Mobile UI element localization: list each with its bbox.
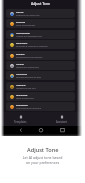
staticText: Tactful and polite tone bbox=[16, 97, 34, 99]
button[interactable]: Authoritative bbox=[6, 30, 75, 39]
staticText: Authoritative bbox=[16, 32, 30, 35]
staticText: Informal bbox=[16, 21, 26, 24]
button[interactable]: Diplomatic bbox=[6, 92, 75, 101]
staticText: Diplomatic bbox=[16, 94, 28, 97]
staticText: Assertive and commanding tone bbox=[16, 35, 42, 37]
button[interactable]: Assistant bbox=[41, 112, 82, 124]
button[interactable]: Emotive bbox=[6, 51, 75, 60]
staticText: Professional and serious tone bbox=[16, 14, 40, 16]
staticText: Templates bbox=[14, 120, 27, 124]
staticText: Assertive bbox=[16, 84, 26, 87]
button[interactable]: Templates bbox=[0, 112, 41, 124]
staticText: Objective and unbiased tone bbox=[16, 66, 39, 68]
staticText: Adjust Tone bbox=[27, 146, 59, 154]
staticText: Tone aimed at convincing or influencing bbox=[16, 45, 48, 47]
button[interactable]: Informal bbox=[6, 19, 75, 28]
staticText: Tone expressing strong emotions bbox=[16, 56, 43, 58]
staticText: Formal bbox=[16, 11, 24, 14]
staticText: Let AI adjust tone based on your prefere… bbox=[21, 155, 64, 165]
staticText: Understanding and caring tone bbox=[16, 107, 41, 109]
staticText: Confident and clear tone bbox=[16, 87, 36, 89]
button[interactable]: Formal bbox=[6, 9, 75, 18]
staticText: Neutral bbox=[16, 63, 24, 66]
button[interactable]: Assertive bbox=[6, 82, 75, 91]
button[interactable]: Neutral bbox=[6, 61, 75, 70]
staticText: Emotive bbox=[16, 53, 25, 56]
other: Templates bbox=[19, 115, 23, 119]
staticText: Assistant bbox=[56, 120, 67, 124]
staticText: Empathetic bbox=[16, 104, 28, 107]
button[interactable]: Humorous bbox=[6, 71, 75, 80]
button[interactable]: Empathetic bbox=[6, 102, 75, 111]
other: Assistant bbox=[60, 115, 64, 119]
staticText: Humorous bbox=[16, 73, 28, 76]
staticText: Adjust Tone bbox=[31, 1, 51, 6]
button[interactable]: Persuasive bbox=[6, 40, 75, 49]
staticText: Casual and relaxed tone bbox=[16, 24, 36, 26]
staticText: Tone using witty jokes for effect bbox=[16, 76, 42, 78]
staticText: Persuasive bbox=[16, 42, 28, 45]
